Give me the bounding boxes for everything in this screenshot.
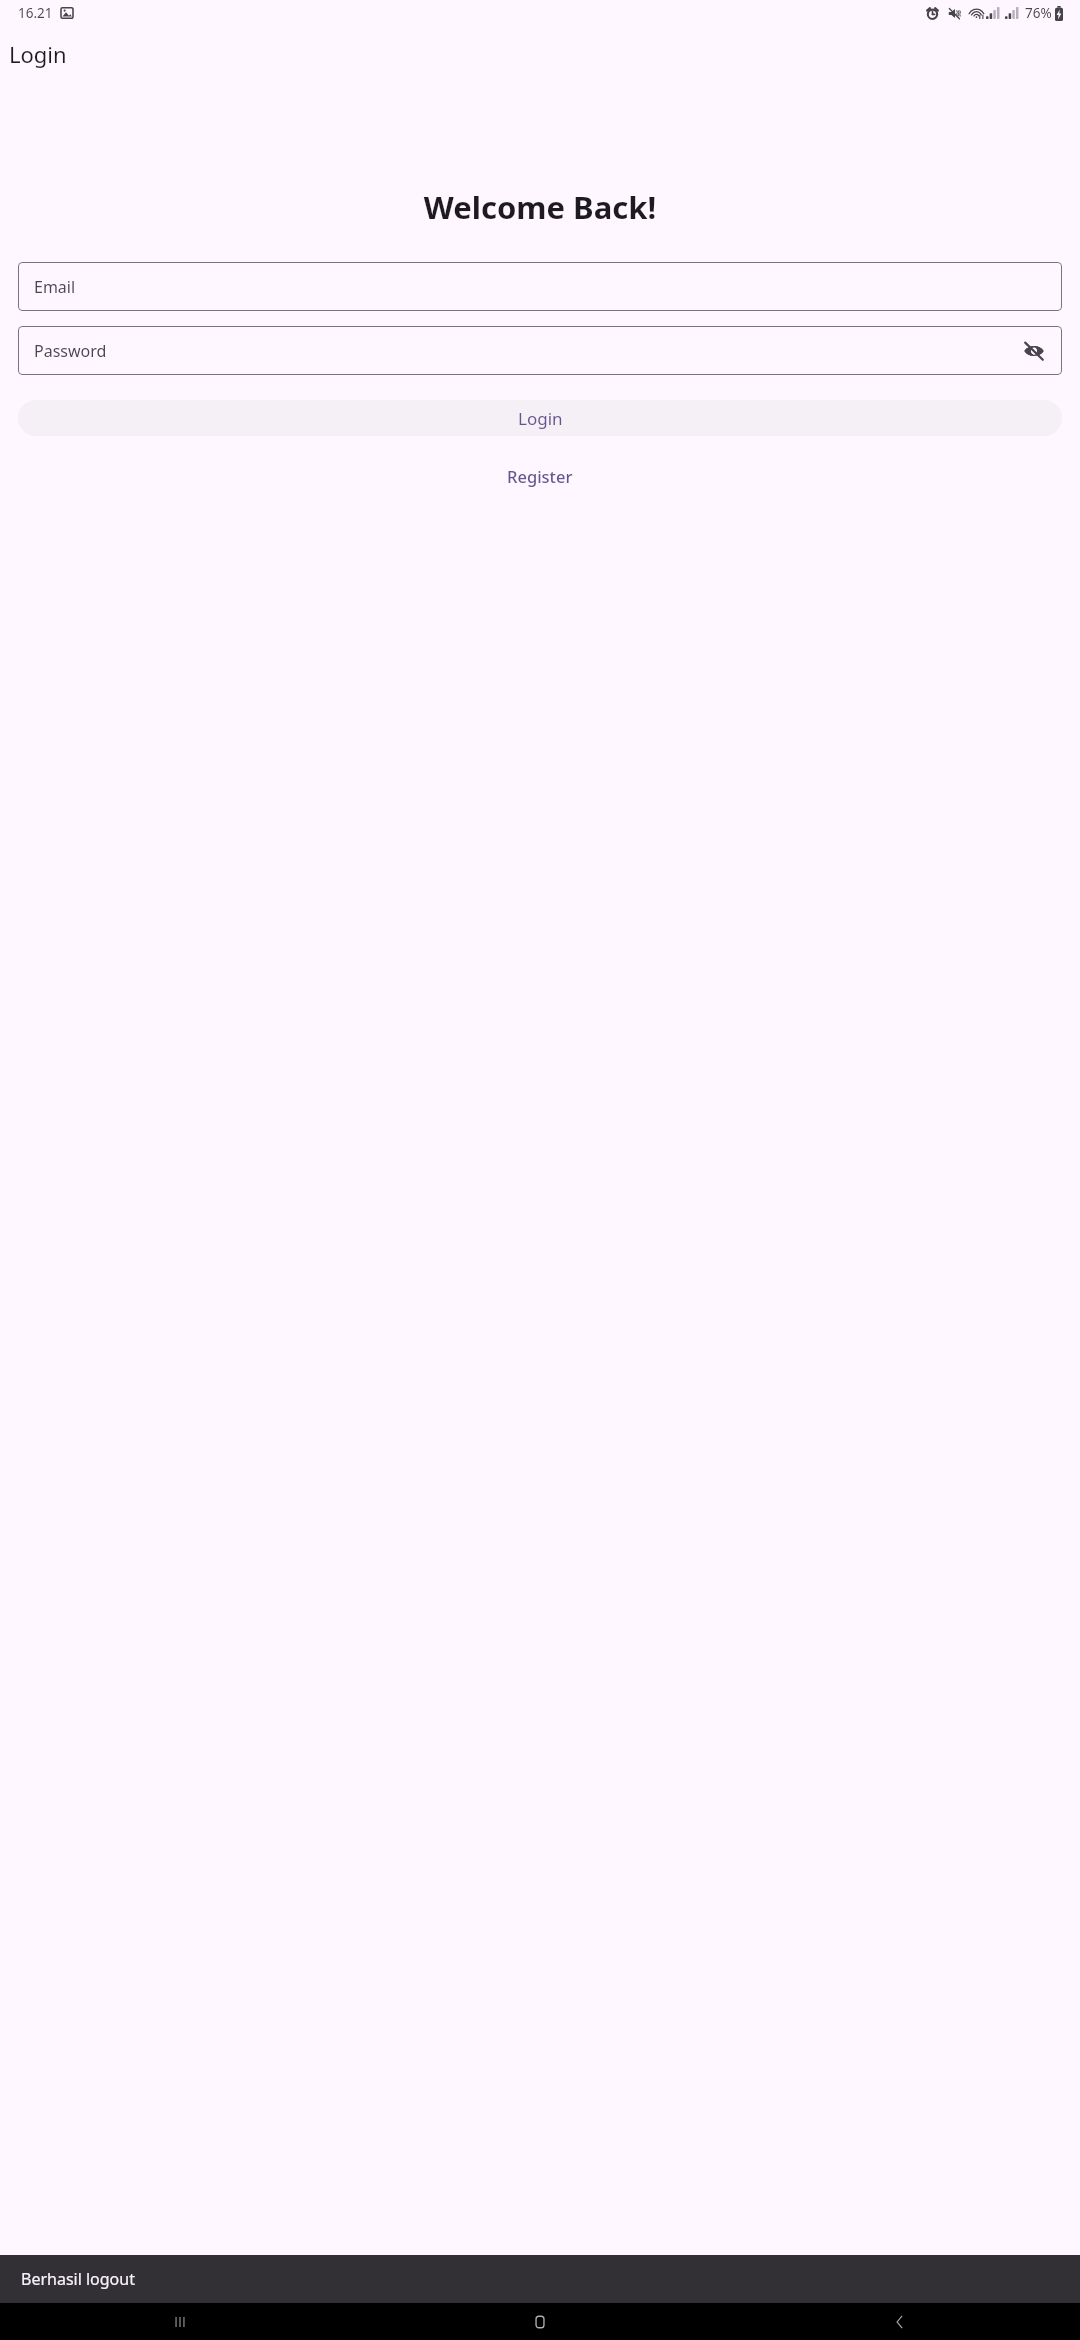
staticText: 16.21 xyxy=(18,4,53,22)
button[interactable]: Recent apps xyxy=(0,2303,360,2340)
button[interactable]: Login xyxy=(18,400,1062,436)
button[interactable]: Password xyxy=(18,326,1062,375)
staticText: Welcome Back! xyxy=(0,186,1080,228)
button[interactable]: Back xyxy=(720,2303,1080,2340)
button[interactable]: Email xyxy=(18,262,1062,311)
button[interactable]: Home xyxy=(360,2303,720,2340)
staticText: Login xyxy=(9,39,67,69)
staticText: Register xyxy=(507,465,573,487)
staticText: 76% xyxy=(1025,4,1052,22)
staticText: Login xyxy=(518,407,563,430)
staticText: Berhasil logout xyxy=(21,2268,135,2290)
staticText: Email xyxy=(34,276,76,298)
button[interactable]: Register xyxy=(489,458,591,494)
button[interactable]: Toggle password visibility xyxy=(1014,331,1054,371)
staticText: Password xyxy=(34,340,107,362)
